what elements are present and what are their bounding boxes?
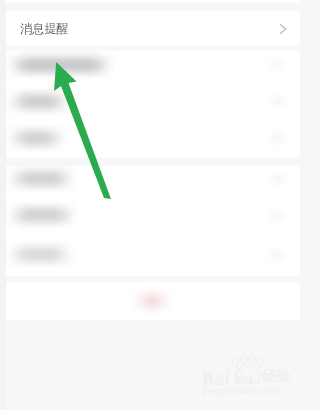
button[interactable] bbox=[6, 120, 300, 156]
staticText: 消息提醒 bbox=[20, 21, 69, 36]
button[interactable]: 消息提醒 bbox=[6, 11, 300, 44]
staticText: du bbox=[236, 369, 253, 387]
button[interactable] bbox=[6, 239, 300, 270]
button[interactable] bbox=[6, 191, 300, 239]
staticText: Bai bbox=[202, 366, 231, 391]
button[interactable] bbox=[6, 166, 300, 191]
other: More bbox=[273, 21, 287, 35]
other: Baidu Jingyan bbox=[0, 0, 320, 410]
button[interactable] bbox=[6, 282, 300, 320]
button[interactable] bbox=[6, 83, 300, 120]
button[interactable] bbox=[6, 47, 300, 83]
